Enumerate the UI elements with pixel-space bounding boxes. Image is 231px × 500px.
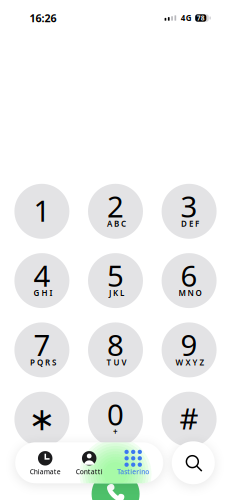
staticText: ∗: [28, 401, 55, 437]
button[interactable]: #: [162, 392, 217, 447]
staticText: 1: [33, 191, 50, 230]
staticText: PQRS: [30, 357, 56, 368]
staticText: +: [113, 426, 118, 437]
staticText: Chiamate: [30, 467, 61, 476]
staticText: MNO: [179, 288, 202, 298]
staticText: 7: [33, 325, 50, 364]
button[interactable]: Contatti: [67, 442, 111, 483]
button[interactable]: 0: [88, 392, 143, 447]
staticText: #: [180, 399, 199, 438]
button[interactable]: 4: [14, 253, 69, 308]
button[interactable]: Tastierino: [111, 442, 155, 483]
staticText: 9: [181, 325, 198, 364]
staticText: TUV: [106, 357, 126, 368]
button[interactable]: 8: [88, 322, 143, 377]
button[interactable]: 2: [88, 184, 143, 239]
button[interactable]: 5: [88, 253, 143, 308]
staticText: Tastierino: [117, 467, 149, 476]
staticText: 6: [181, 256, 198, 295]
button[interactable]: ∗: [14, 392, 69, 447]
staticText: 3: [181, 187, 198, 226]
button[interactable]: Chiamate: [23, 442, 67, 483]
staticText: JKL: [109, 288, 124, 298]
button[interactable]: Call: [92, 470, 140, 500]
button[interactable]: 9: [162, 322, 217, 377]
staticText: WXYZ: [176, 357, 205, 368]
staticText: 4G: [181, 13, 192, 23]
staticText: GHI: [33, 288, 52, 298]
staticText: ABC: [107, 218, 126, 229]
staticText: Contatti: [76, 467, 103, 476]
staticText: 4: [33, 256, 50, 295]
staticText: 5: [107, 256, 124, 295]
button[interactable]: 3: [162, 184, 217, 239]
staticText: 2: [107, 187, 124, 226]
button[interactable]: 1: [14, 184, 69, 239]
staticText: 16:26: [29, 11, 56, 25]
staticText: DEF: [181, 218, 199, 229]
button[interactable]: Search: [172, 441, 215, 484]
button[interactable]: 6: [162, 253, 217, 308]
staticText: 8: [107, 325, 124, 364]
staticText: 78: [197, 14, 205, 22]
button[interactable]: 7: [14, 322, 69, 377]
staticText: 0: [107, 394, 124, 433]
